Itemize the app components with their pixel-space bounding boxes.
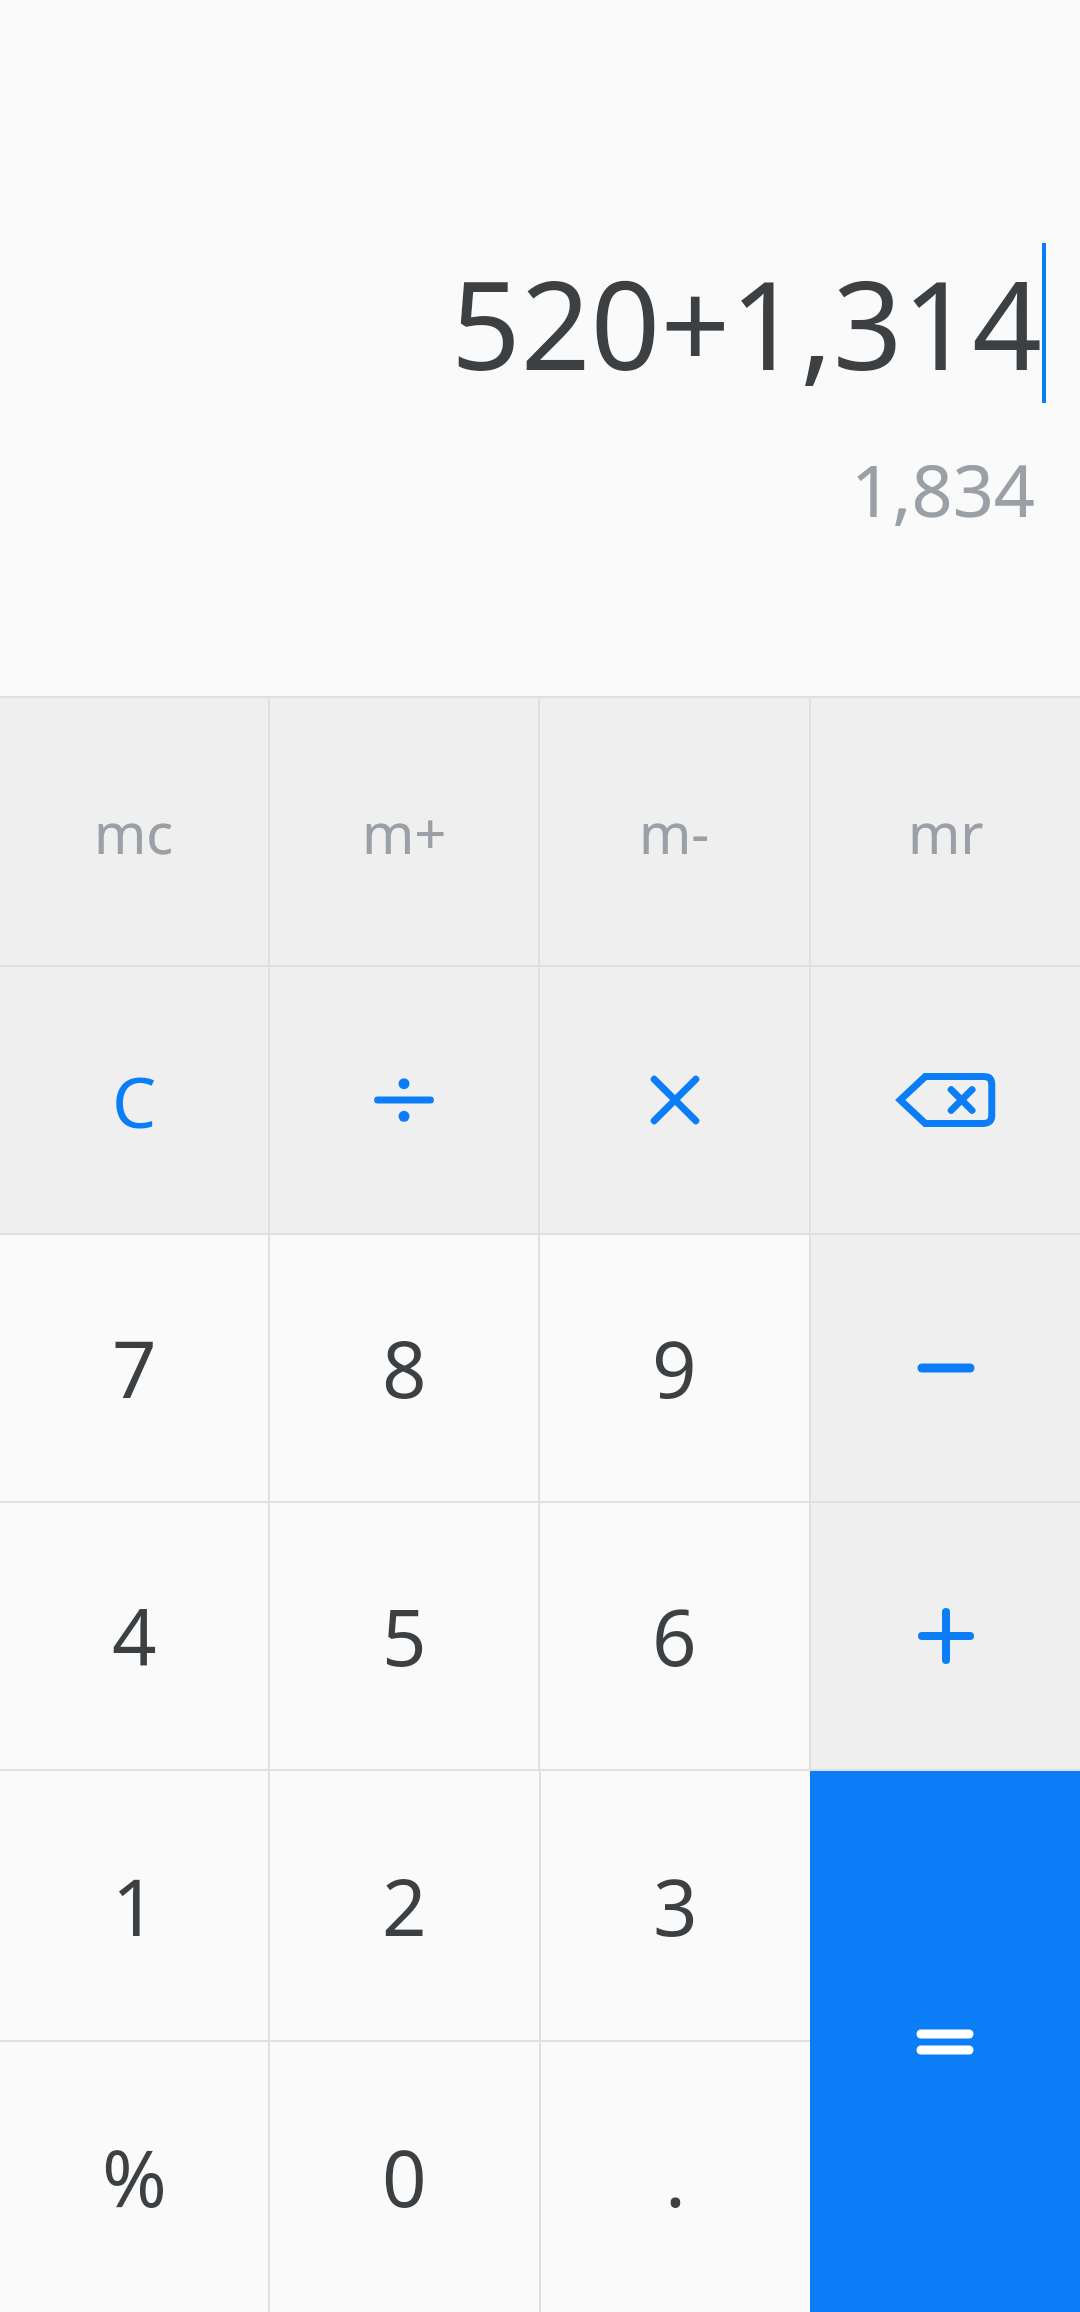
staticText: 2 — [382, 1853, 427, 1959]
button[interactable]: 0 — [270, 2042, 539, 2312]
staticText: 0 — [382, 2124, 427, 2230]
staticText: 520+1,314 — [451, 240, 1042, 406]
staticText: 1 — [112, 1853, 157, 1959]
button[interactable]: Multiply — [540, 967, 809, 1233]
button[interactable]: Divide — [270, 967, 538, 1233]
button[interactable]: Equals — [810, 1771, 1080, 2312]
staticText: 5 — [382, 1583, 427, 1689]
button[interactable]: m+ — [270, 698, 538, 965]
button[interactable]: Plus — [811, 1503, 1080, 1769]
staticText: 8 — [382, 1315, 427, 1421]
staticText: m- — [639, 794, 710, 870]
button[interactable]: Minus — [811, 1235, 1080, 1501]
button[interactable]: 8 — [270, 1235, 538, 1501]
staticText: 9 — [652, 1315, 697, 1421]
staticText: 6 — [652, 1583, 697, 1689]
staticText: mr — [908, 794, 984, 870]
button[interactable]: % — [0, 2042, 268, 2312]
button[interactable]: 2 — [270, 1771, 539, 2040]
staticText: 3 — [653, 1853, 698, 1959]
button[interactable]: 7 — [0, 1235, 268, 1501]
button[interactable]: Backspace — [811, 967, 1080, 1233]
staticText: % — [102, 2124, 167, 2230]
button[interactable]: m- — [540, 698, 809, 965]
button[interactable]: 4 — [0, 1503, 268, 1769]
button[interactable]: 6 — [540, 1503, 809, 1769]
staticText: 7 — [112, 1315, 157, 1421]
staticText: 1,834 — [850, 440, 1035, 538]
button[interactable]: mr — [811, 698, 1080, 965]
button[interactable]: 5 — [270, 1503, 538, 1769]
button[interactable]: 3 — [541, 1771, 810, 2040]
button[interactable]: 1 — [0, 1771, 268, 2040]
button[interactable]: 9 — [540, 1235, 809, 1501]
staticText: C — [112, 1053, 157, 1148]
button[interactable]: . — [541, 2042, 810, 2312]
button[interactable]: mc — [0, 698, 268, 965]
staticText: . — [665, 2124, 686, 2230]
staticText: 4 — [112, 1583, 157, 1689]
staticText: mc — [94, 794, 174, 870]
button[interactable]: Clear — [0, 967, 268, 1233]
staticText: m+ — [362, 794, 447, 870]
